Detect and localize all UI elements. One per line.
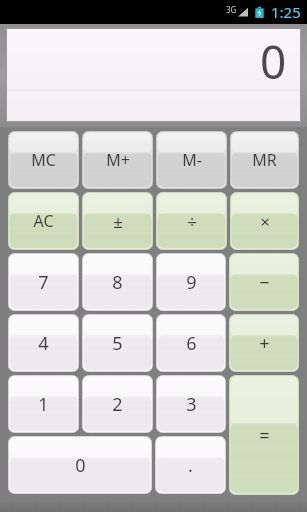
staticText: × — [260, 210, 270, 233]
button[interactable]: M+ — [82, 131, 153, 189]
button[interactable]: − — [229, 253, 299, 311]
button[interactable]: AC — [8, 192, 79, 250]
button[interactable]: 7 — [8, 253, 79, 311]
button[interactable]: 6 — [156, 314, 226, 372]
staticText: M+ — [106, 149, 130, 171]
button[interactable]: = — [229, 375, 299, 495]
staticText: MC — [31, 149, 56, 171]
button[interactable]: 5 — [82, 314, 153, 372]
button[interactable]: M- — [156, 131, 227, 189]
button[interactable]: 9 — [156, 253, 226, 311]
staticText: 0 — [75, 453, 86, 478]
staticText: 7 — [38, 270, 49, 295]
staticText: 3 — [186, 392, 197, 417]
staticText: . — [188, 453, 193, 478]
button[interactable]: 4 — [8, 314, 79, 372]
staticText: MR — [252, 149, 277, 171]
staticText: + — [259, 331, 270, 356]
staticText: 1 — [38, 392, 49, 417]
staticText: M- — [182, 149, 202, 171]
button[interactable]: 2 — [82, 375, 153, 433]
staticText: 4 — [38, 331, 49, 356]
staticText: 3G — [226, 4, 237, 15]
button[interactable]: . — [155, 436, 226, 494]
button[interactable]: + — [229, 314, 299, 372]
button[interactable]: MC — [8, 131, 79, 189]
staticText: − — [259, 270, 270, 295]
staticText: 6 — [186, 331, 197, 356]
staticText: 8 — [112, 270, 123, 295]
staticText: 2 — [112, 392, 123, 417]
button[interactable]: ÷ — [156, 192, 227, 250]
button[interactable]: 8 — [82, 253, 153, 311]
button[interactable]: ± — [82, 192, 153, 250]
staticText: 0 — [260, 30, 287, 93]
staticText: 1:25 — [271, 2, 301, 22]
staticText: = — [259, 423, 270, 448]
staticText: 9 — [186, 270, 197, 295]
staticText: AC — [33, 210, 54, 232]
staticText: ÷ — [187, 210, 197, 233]
button[interactable]: MR — [230, 131, 299, 189]
button[interactable]: 3 — [156, 375, 226, 433]
button[interactable]: 1 — [8, 375, 79, 433]
staticText: 5 — [112, 331, 123, 356]
staticText: ± — [113, 210, 123, 233]
button[interactable]: 0 — [8, 436, 152, 494]
button[interactable]: × — [230, 192, 299, 250]
button[interactable]: 0 — [6, 28, 301, 122]
